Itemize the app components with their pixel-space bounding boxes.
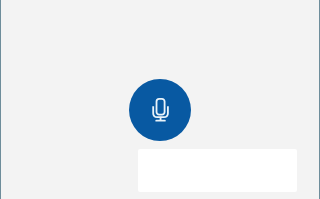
button[interactable]: Microphone, tap to speak <box>129 79 191 141</box>
